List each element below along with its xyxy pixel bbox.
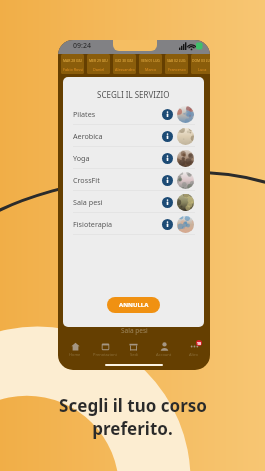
staticText: Scegli il tuo corso bbox=[59, 394, 207, 417]
staticText: Sala pesi bbox=[73, 197, 103, 207]
button[interactable]: Sedi bbox=[120, 342, 147, 359]
staticText: preferito. bbox=[92, 417, 173, 440]
staticText: SAB 02 LUG bbox=[167, 58, 186, 63]
staticText: CrossFit bbox=[73, 175, 100, 185]
staticText: Altro bbox=[189, 352, 199, 357]
button[interactable]: Info Aerobica bbox=[162, 131, 173, 142]
button[interactable]: Info Pilates bbox=[162, 109, 173, 120]
button[interactable]: Fisioterapia bbox=[63, 213, 204, 235]
button[interactable]: Info CrossFit bbox=[162, 175, 173, 186]
button[interactable]: ANNULLA bbox=[107, 297, 160, 313]
staticText: Pilates bbox=[73, 109, 96, 119]
staticText: Marco bbox=[145, 67, 157, 72]
button[interactable]: DOM 03 LUG bbox=[191, 54, 210, 74]
staticText: 09:24 bbox=[73, 41, 91, 51]
staticText: Prenotazioni bbox=[93, 352, 117, 357]
staticText: Francesco bbox=[168, 67, 186, 72]
button[interactable]: Account bbox=[150, 342, 177, 359]
button[interactable]: CrossFit bbox=[63, 169, 204, 191]
staticText: Fabio Rossi bbox=[63, 67, 83, 72]
staticText: GIO 30 GIU bbox=[115, 58, 134, 63]
staticText: DOM 03 LUG bbox=[192, 58, 210, 63]
button[interactable]: GIO 30 GIU bbox=[113, 54, 136, 74]
button[interactable]: Altro bbox=[180, 342, 207, 359]
staticText: Daniel bbox=[93, 67, 105, 72]
button[interactable]: Aerobica bbox=[63, 125, 204, 147]
button[interactable]: Home bbox=[61, 342, 88, 359]
staticText: Sedi bbox=[130, 352, 138, 357]
button[interactable]: MAR 28 GIU bbox=[61, 54, 84, 74]
staticText: Aerobica bbox=[73, 131, 103, 141]
staticText: Alessandro bbox=[115, 67, 135, 72]
button[interactable]: Info Sala pesi bbox=[162, 197, 173, 208]
staticText: MAR 28 GIU bbox=[63, 58, 83, 63]
button[interactable]: Pilates bbox=[63, 103, 204, 125]
button[interactable]: MER 29 GIU bbox=[87, 54, 110, 74]
button[interactable]: Info Fisioterapia bbox=[162, 219, 173, 230]
staticText: 10 bbox=[197, 341, 202, 346]
staticText: Fisioterapia bbox=[73, 219, 113, 229]
button[interactable]: VEN 01 LUG bbox=[139, 54, 162, 74]
staticText: ANNULLA bbox=[119, 301, 149, 309]
staticText: MER 29 GIU bbox=[89, 58, 108, 63]
button[interactable]: Prenotazioni bbox=[91, 342, 118, 359]
button[interactable]: Info Yoga bbox=[162, 153, 173, 164]
button[interactable]: Sala pesi bbox=[63, 191, 204, 213]
staticText: Luca bbox=[198, 67, 207, 72]
button[interactable]: SAB 02 LUG bbox=[165, 54, 188, 74]
button[interactable]: Yoga bbox=[63, 147, 204, 169]
staticText: Home bbox=[69, 352, 81, 357]
staticText: Sala pesi bbox=[121, 326, 148, 335]
staticText: SCEGLI IL SERVIZIO bbox=[97, 89, 170, 100]
staticText: Account bbox=[156, 352, 172, 357]
staticText: VEN 01 LUG bbox=[141, 58, 160, 63]
staticText: Yoga bbox=[73, 153, 90, 163]
